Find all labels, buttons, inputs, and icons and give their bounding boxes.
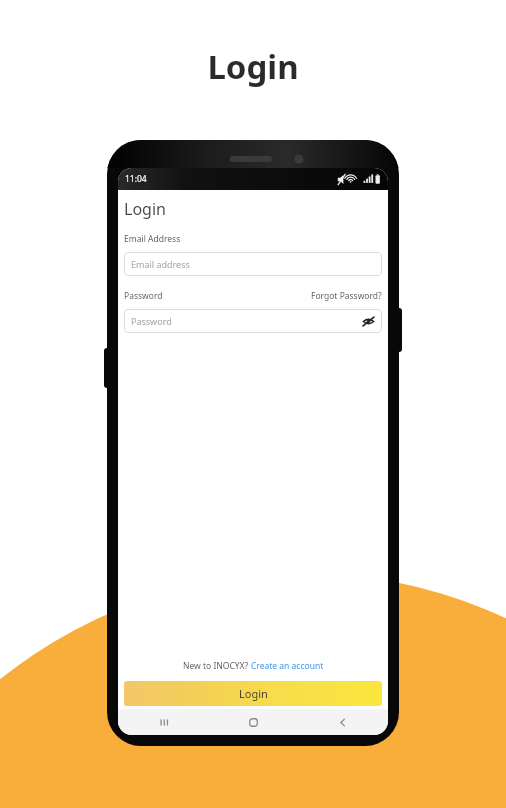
button[interactable]: Back — [298, 709, 388, 735]
staticText: Create an account — [251, 660, 324, 672]
staticText: Login — [207, 44, 299, 89]
staticText: Password — [131, 315, 172, 327]
staticText: Email address — [131, 258, 190, 270]
staticText: Email Address — [124, 233, 181, 245]
button[interactable]: Login — [124, 681, 382, 706]
staticText: Login — [239, 686, 268, 701]
staticText: 11:04 — [125, 173, 147, 185]
button[interactable]: Email address — [124, 252, 382, 276]
button[interactable]: Recent apps — [118, 709, 208, 735]
staticText: Login — [124, 198, 166, 220]
button[interactable]: Show password — [361, 314, 375, 328]
button[interactable]: Home — [208, 709, 298, 735]
staticText: New to INOCYX? — [183, 660, 251, 672]
staticText: Forgot Password? — [311, 290, 382, 302]
staticText: Password — [124, 290, 163, 302]
button[interactable]: Password — [124, 309, 382, 333]
button[interactable]: Forgot Password? — [311, 290, 382, 302]
button[interactable]: Create an account — [251, 660, 324, 672]
